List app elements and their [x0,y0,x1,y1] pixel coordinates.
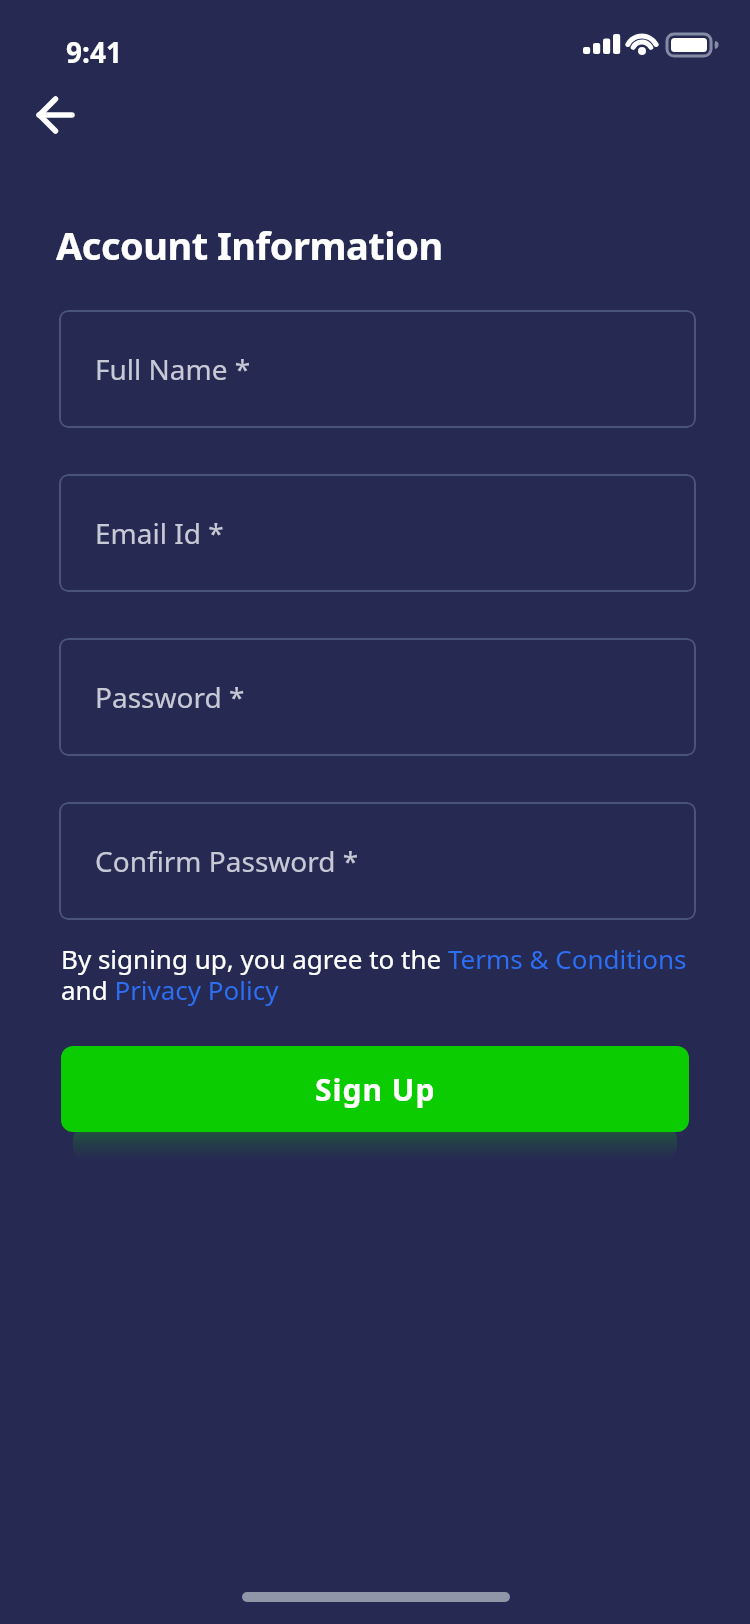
staticText: By signing up, you agree to the Terms & … [61,941,687,976]
button[interactable]: Sign Up [61,1046,689,1132]
button[interactable]: Confirm Password * [59,802,696,920]
staticText: Email Id * [95,514,224,552]
staticText: Account Information [56,219,443,271]
staticText: Full Name * [95,350,251,388]
button[interactable]: Full Name * [59,310,696,428]
staticText: Sign Up [315,1069,436,1110]
button[interactable]: Email Id * [59,474,696,592]
staticText: Confirm Password * [95,842,359,880]
button[interactable] [30,89,82,141]
button[interactable]: Password * [59,638,696,756]
staticText: Password * [95,678,245,716]
staticText: 9:41 [66,33,122,71]
staticText: and Privacy Policy [61,972,279,1007]
